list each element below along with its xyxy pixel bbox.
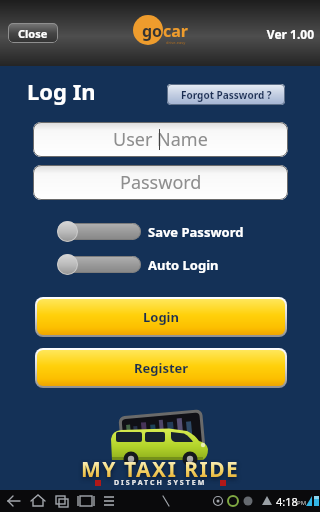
staticText: MY TAXI RIDE bbox=[81, 455, 240, 484]
button[interactable]: Login bbox=[35, 297, 287, 337]
staticText: User Name bbox=[113, 127, 208, 152]
staticText: PM bbox=[297, 499, 307, 507]
staticText: Ver 1.00 bbox=[262, 26, 314, 42]
button[interactable]: User Name bbox=[33, 122, 288, 157]
button[interactable] bbox=[57, 254, 141, 275]
staticText: go bbox=[142, 20, 163, 42]
staticText: drive-easy bbox=[166, 40, 186, 45]
button[interactable] bbox=[57, 221, 141, 242]
staticText: Forgot Password ? bbox=[181, 88, 272, 102]
staticText: Password bbox=[120, 170, 202, 195]
staticText: 4:18 bbox=[276, 494, 298, 509]
staticText: car bbox=[163, 20, 188, 42]
button[interactable]: Close bbox=[8, 23, 58, 43]
button[interactable]: Forgot Password ? bbox=[167, 84, 285, 105]
staticText: Login bbox=[143, 308, 179, 326]
staticText: Register bbox=[134, 359, 189, 377]
button[interactable]: Password bbox=[33, 165, 288, 200]
staticText: DISPATCH SYSTEM bbox=[114, 478, 207, 488]
staticText: Auto Login bbox=[148, 256, 219, 274]
staticText: Save Password bbox=[148, 223, 244, 241]
staticText: Log In bbox=[27, 76, 96, 106]
button[interactable]: Register bbox=[35, 348, 287, 388]
staticText: Close bbox=[18, 26, 48, 41]
